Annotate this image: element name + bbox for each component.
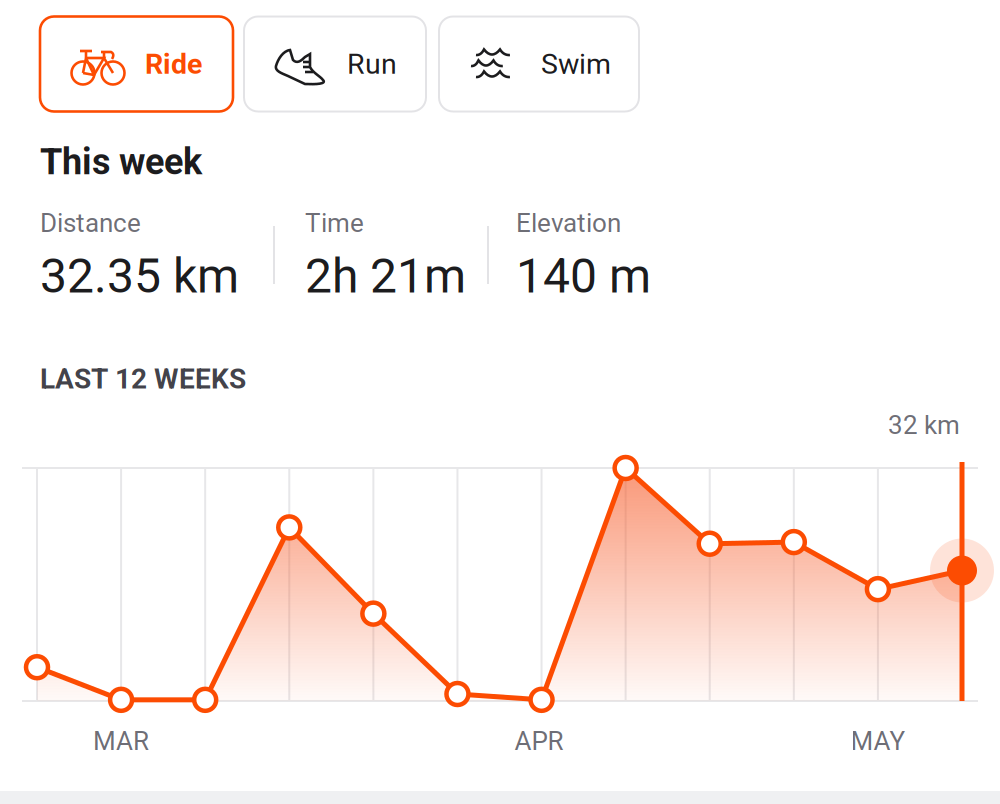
staticText: Elevation: [516, 208, 621, 238]
staticText: Run: [347, 47, 397, 81]
button[interactable]: Run: [244, 16, 426, 111]
staticText: APR: [514, 726, 563, 756]
staticText: MAR: [93, 726, 149, 756]
staticText: Time: [305, 208, 364, 238]
staticText: 32.35 km: [40, 248, 239, 304]
staticText: 32 km: [888, 410, 960, 440]
staticText: MAY: [850, 726, 905, 756]
staticText: This week: [40, 141, 202, 183]
staticText: Swim: [541, 47, 611, 81]
staticText: Ride: [145, 47, 202, 81]
button[interactable]: Ride: [40, 16, 233, 111]
staticText: Distance: [40, 208, 141, 238]
button[interactable]: Swim: [439, 16, 639, 111]
staticText: 140 m: [516, 248, 651, 304]
staticText: LAST 12 WEEKS: [40, 363, 246, 395]
staticText: 2h 21m: [305, 248, 466, 304]
